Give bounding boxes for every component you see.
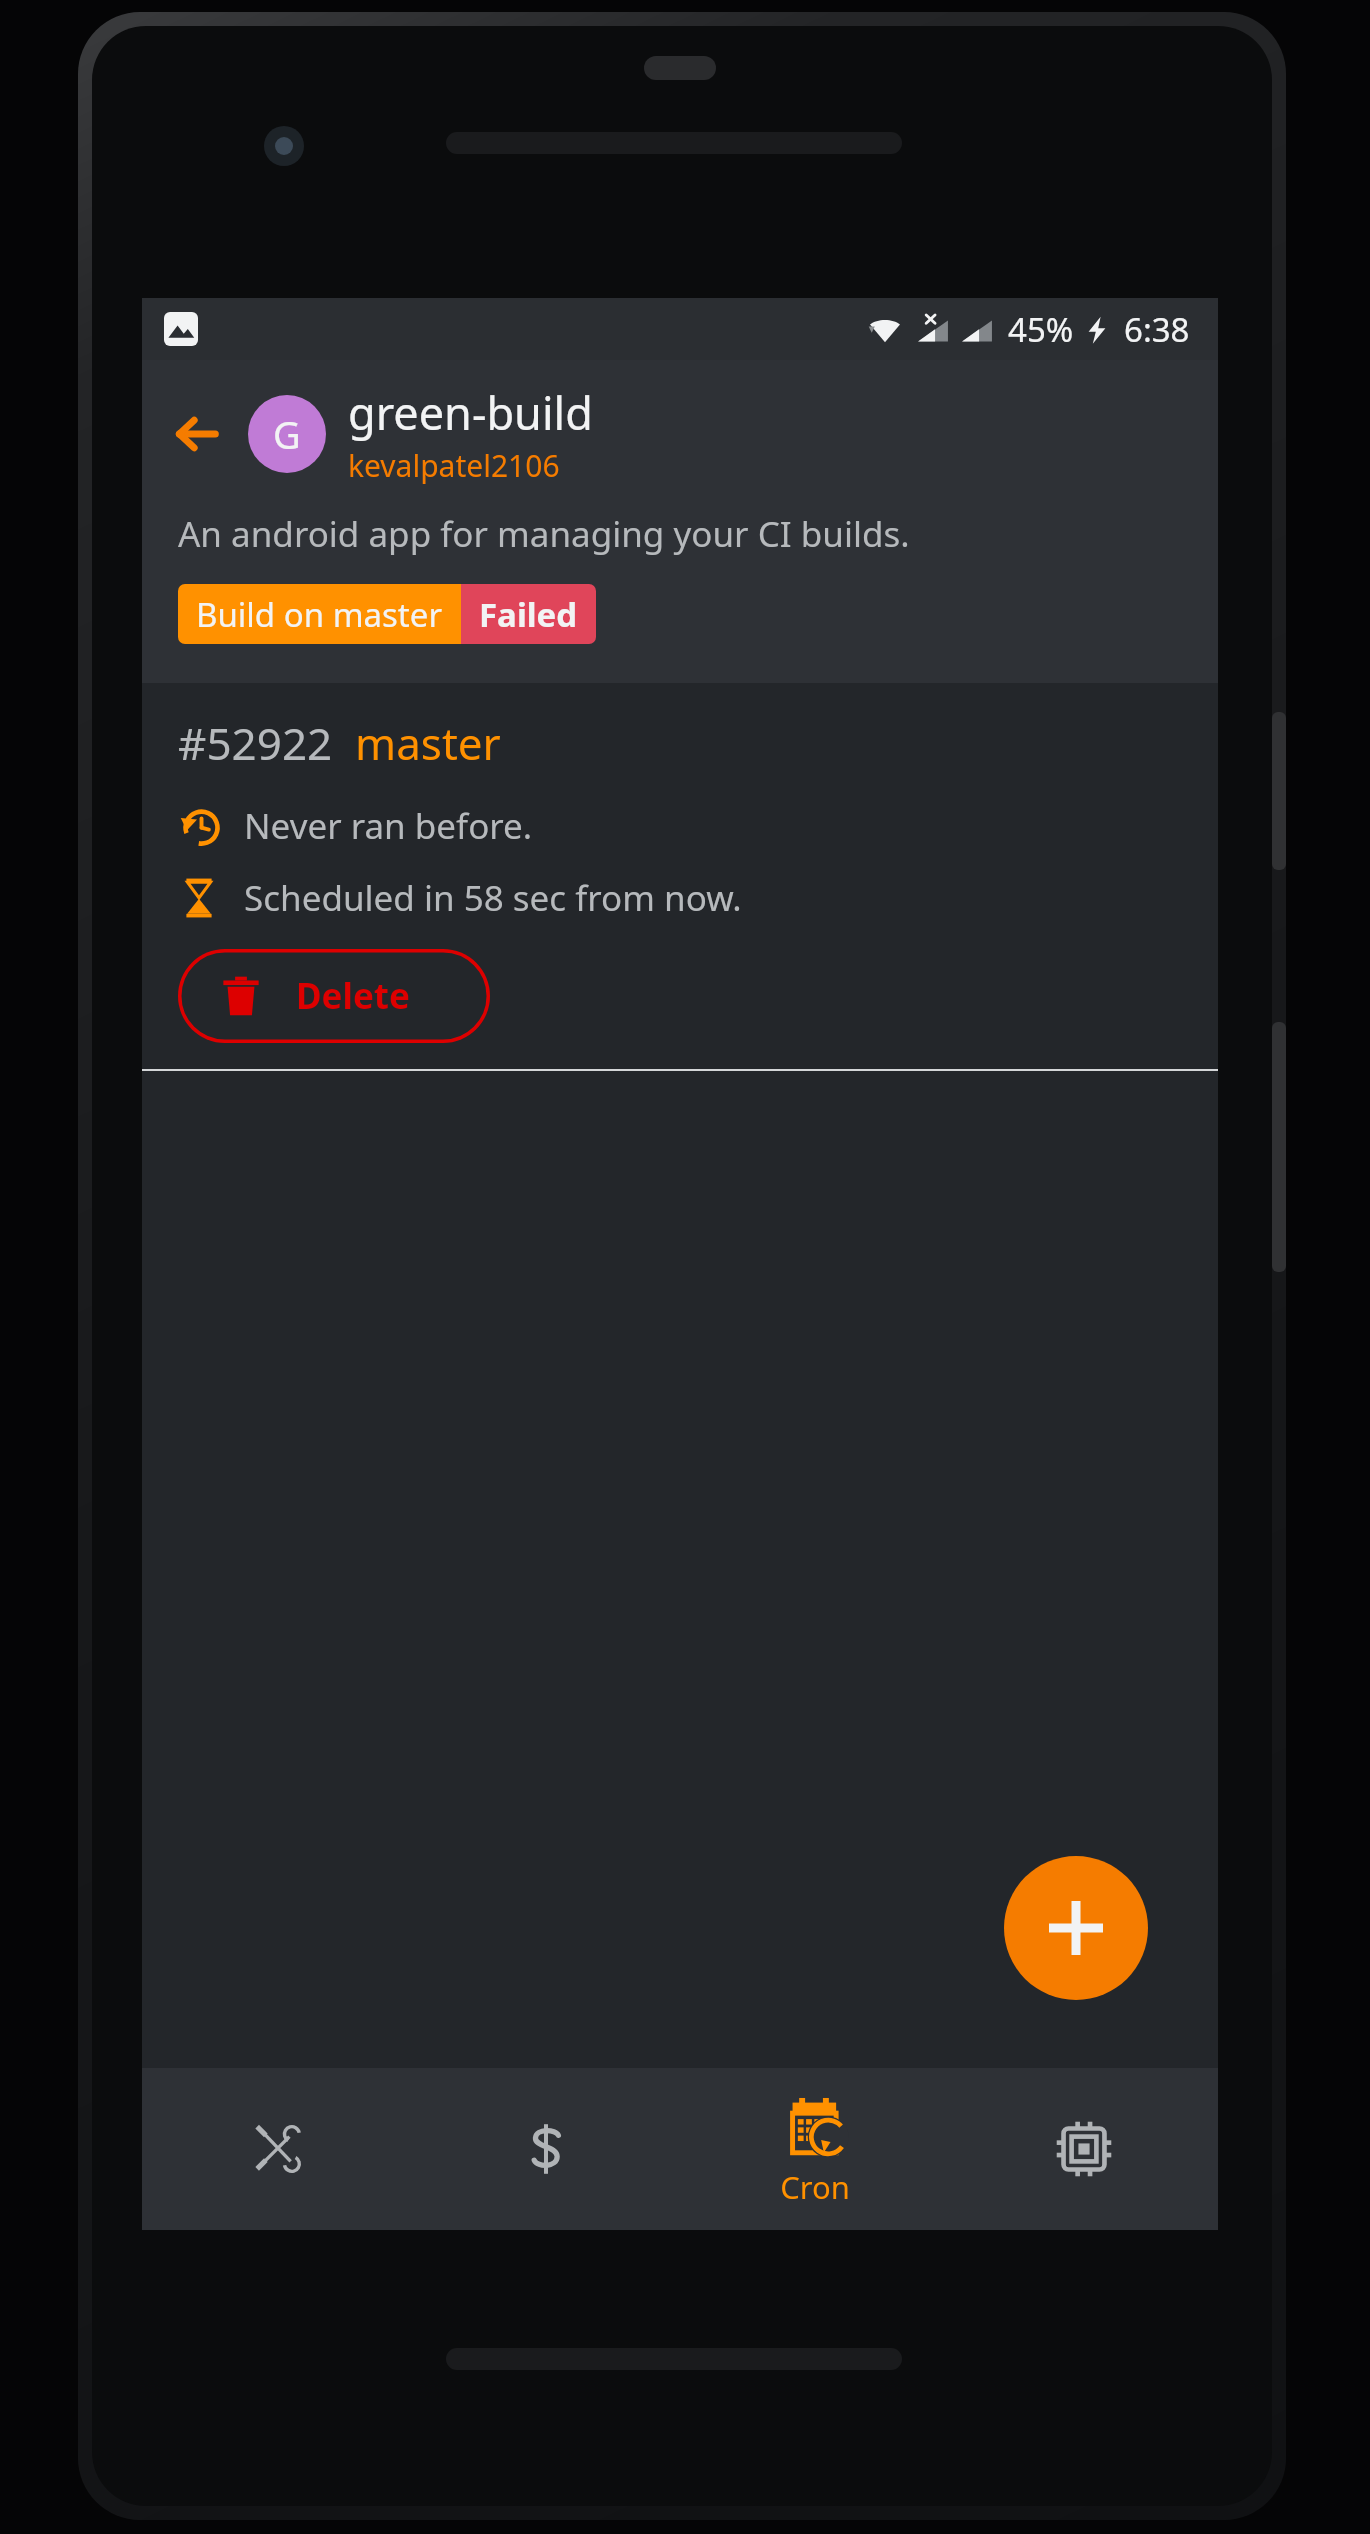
staticText: green-build: [348, 382, 593, 443]
button[interactable]: Delete: [178, 949, 490, 1043]
button[interactable]: Build on master: [178, 584, 596, 644]
staticText: kevalpatel2106: [348, 445, 560, 486]
button[interactable]: Cache: [949, 2068, 1218, 2230]
staticText: Delete: [296, 972, 410, 1020]
staticText: An android app for managing your CI buil…: [178, 510, 910, 558]
staticText: Never ran before.: [244, 802, 533, 850]
staticText: Cron: [780, 2166, 850, 2208]
staticText: Failed: [479, 592, 578, 637]
button[interactable]: Cron: [680, 2068, 949, 2230]
button[interactable]: Cost: [411, 2068, 680, 2230]
staticText: #52922: [178, 713, 333, 773]
staticText: 6:38: [1124, 307, 1190, 352]
button[interactable]: Add cron job: [1004, 1856, 1148, 2000]
staticText: G: [273, 408, 301, 460]
button[interactable]: Build tools: [142, 2068, 411, 2230]
staticText: master: [355, 713, 501, 773]
button[interactable]: #52922: [142, 683, 1218, 1071]
staticText: Scheduled in 58 sec from now.: [244, 874, 742, 922]
staticText: 45%: [1008, 307, 1074, 352]
staticText: Build on master: [196, 592, 443, 637]
button[interactable]: Back: [158, 396, 234, 472]
